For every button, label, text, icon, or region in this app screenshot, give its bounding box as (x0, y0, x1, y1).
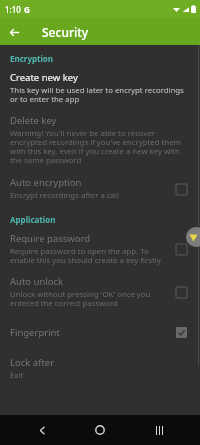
staticText: Exit (10, 370, 24, 381)
staticText: Delete key (10, 114, 57, 127)
staticText: Unlock without pressing 'OK' once you en… (10, 289, 170, 309)
button[interactable]: Back (25, 415, 59, 445)
button[interactable]: Auto encryption (170, 178, 192, 200)
staticText: Security (42, 24, 89, 40)
button[interactable]: Auto unlock (170, 281, 192, 303)
staticText: Require password (10, 232, 91, 245)
button[interactable]: Auto unlock (0, 270, 200, 314)
staticText: Auto encryption (10, 176, 82, 189)
staticText: Require password to open the app. To ena… (10, 246, 170, 266)
staticText: Create new key (10, 71, 78, 84)
staticText: This key will be used later to encrypt r… (10, 85, 192, 105)
button[interactable]: Fingerprint (0, 314, 200, 350)
button[interactable]: Create new key (0, 67, 200, 109)
staticText: Auto unlock (10, 275, 64, 288)
button[interactable]: Recent apps (142, 415, 176, 445)
button[interactable]: Require password (0, 228, 200, 270)
button[interactable]: Fast scroll (186, 227, 200, 247)
button[interactable]: Fingerprint (170, 321, 192, 343)
button[interactable]: Auto encryption (0, 171, 200, 206)
staticText: Lock after (10, 356, 55, 369)
button[interactable]: Require password (170, 238, 192, 260)
button[interactable]: Delete key (0, 109, 200, 171)
staticText: G (24, 4, 30, 15)
staticText: Warning! You'll never be able to recover… (10, 128, 192, 166)
button[interactable]: Back (4, 22, 24, 42)
staticText: 1:10 (5, 4, 21, 15)
staticText: Encryption (10, 53, 54, 64)
button[interactable]: Lock after (0, 350, 200, 387)
staticText: Encrypt recordings after a call (10, 190, 119, 201)
button[interactable]: Home (83, 415, 117, 445)
staticText: Application (10, 214, 56, 225)
staticText: Fingerprint (10, 326, 60, 339)
